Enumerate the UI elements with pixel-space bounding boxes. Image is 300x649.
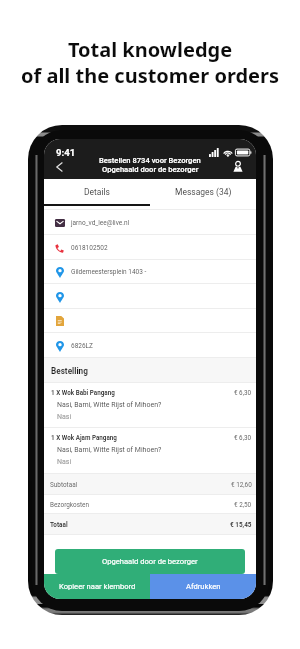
button[interactable]: jarno_vd_lee@live.nl xyxy=(44,210,256,235)
staticText: € 6,30 xyxy=(234,389,251,396)
button[interactable]: Messages (34) xyxy=(150,179,256,206)
staticText: Nasi xyxy=(57,413,72,421)
staticText: 1 X Wok Ajam Pangang xyxy=(51,434,117,441)
staticText: Afdrukken xyxy=(186,582,221,591)
staticText: Subtotaal xyxy=(50,481,78,489)
staticText: 9:41 xyxy=(56,147,76,158)
button[interactable]: Account xyxy=(228,156,248,176)
staticText: 1 X Wok Babi Pangang xyxy=(51,389,115,396)
button[interactable]: Kopieer naar klembord xyxy=(44,574,150,599)
staticText: Bezorgkosten xyxy=(50,501,90,509)
button[interactable]: Afdrukken xyxy=(150,574,256,599)
staticText: Total knowledge of all the customer orde… xyxy=(0,36,300,89)
staticText: Bestellen 8734 voor Bezorgen xyxy=(99,156,201,165)
staticText: Nasi, Bami, Witte Rijst of Mihoen? xyxy=(57,401,162,409)
button[interactable]: Opgehaald door de bezorger xyxy=(55,549,245,574)
staticText: Nasi xyxy=(57,458,72,466)
staticText: Bestelling xyxy=(51,366,88,376)
button[interactable]: Gildemeesterspleín 1403 - xyxy=(44,259,256,284)
button[interactable]: Details xyxy=(44,179,150,206)
button[interactable]: 6826LZ xyxy=(44,333,256,358)
staticText: jarno_vd_lee@live.nl xyxy=(71,219,130,227)
button[interactable]: Back xyxy=(49,157,69,177)
staticText: € 2,50 xyxy=(234,501,252,509)
staticText: 0618102502 xyxy=(71,244,108,252)
button[interactable]: 0618102502 xyxy=(44,235,256,260)
staticText: Opgehaald door de bezorger xyxy=(102,165,199,174)
staticText: Nasi, Bami, Witte Rijst of Mihoen? xyxy=(57,446,162,454)
staticText: Totaal xyxy=(50,521,68,529)
staticText: € 12,60 xyxy=(231,481,252,489)
staticText: Messages (34) xyxy=(175,187,232,197)
button[interactable] xyxy=(44,308,256,333)
staticText: Details xyxy=(84,187,111,197)
staticText: € 6,30 xyxy=(234,434,251,441)
staticText: Opgehaald door de bezorger xyxy=(102,557,198,566)
staticText: 6826LZ xyxy=(71,342,94,350)
staticText: Gildemeesterspleín 1403 - xyxy=(71,268,147,276)
staticText: € 15,45 xyxy=(230,521,252,529)
staticText: Kopieer naar klembord xyxy=(59,582,136,591)
button[interactable] xyxy=(44,284,256,309)
